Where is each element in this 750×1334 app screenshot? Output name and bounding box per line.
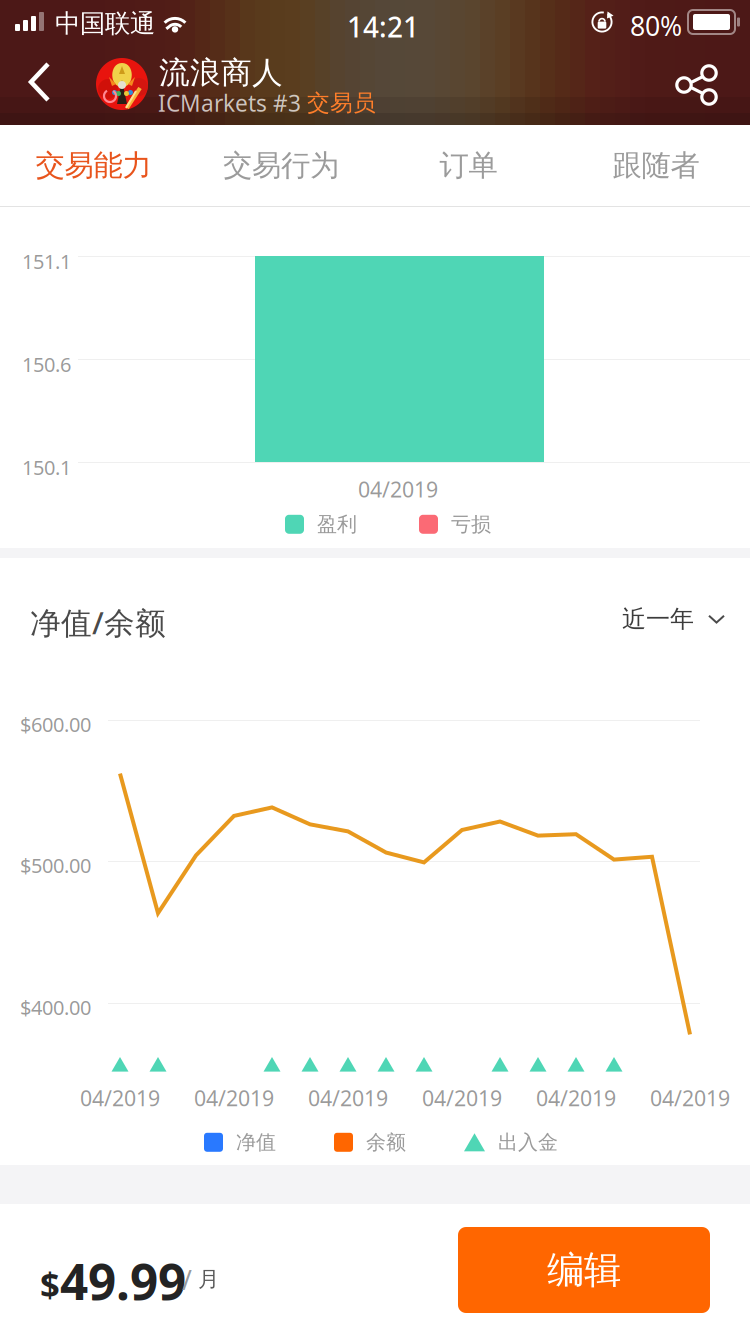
staticText: 中国联通 xyxy=(55,8,155,39)
staticText: 订单 xyxy=(439,147,497,183)
staticText: 出入金 xyxy=(498,1130,558,1155)
staticText: 80% xyxy=(630,8,682,43)
staticText: $400.00 xyxy=(20,994,91,1021)
staticText: $500.00 xyxy=(20,852,91,879)
staticText: 04/2019 xyxy=(194,1084,274,1112)
staticText: 净值/余额 xyxy=(30,602,166,643)
staticText: 04/2019 xyxy=(536,1084,616,1112)
button[interactable]: 编辑 xyxy=(458,1227,710,1313)
staticText: 交易能力 xyxy=(35,147,151,183)
staticText: 月 xyxy=(198,1266,219,1292)
staticText: 04/2019 xyxy=(358,475,438,503)
button[interactable]: Back xyxy=(4,45,76,119)
button[interactable]: 订单 xyxy=(375,125,562,206)
staticText: 04/2019 xyxy=(308,1084,388,1112)
button[interactable]: 跟随者 xyxy=(562,125,750,206)
button[interactable]: 近一年 xyxy=(610,593,737,645)
staticText: 04/2019 xyxy=(422,1084,502,1112)
button[interactable]: Share xyxy=(653,47,739,121)
staticText: 151.1 xyxy=(22,248,71,275)
staticText: 近一年 xyxy=(622,604,694,634)
staticText: 亏损 xyxy=(451,512,491,537)
staticText: 交易员 xyxy=(307,89,376,117)
staticText: ICMarkets #3 xyxy=(158,88,307,118)
button[interactable]: 交易能力 xyxy=(0,125,187,206)
staticText: 150.1 xyxy=(22,454,71,481)
staticText: 净值 xyxy=(236,1130,276,1155)
staticText: $600.00 xyxy=(20,711,91,738)
staticText: 编辑 xyxy=(547,1247,621,1293)
staticText: 跟随者 xyxy=(612,147,699,183)
staticText: 04/2019 xyxy=(80,1084,160,1112)
staticText: 流浪商人 xyxy=(159,54,283,92)
staticText: 150.6 xyxy=(22,351,71,378)
staticText: 04/2019 xyxy=(650,1084,730,1112)
button[interactable]: 交易行为 xyxy=(187,125,375,206)
staticText: 余额 xyxy=(366,1130,406,1155)
staticText: 49.99 xyxy=(60,1248,186,1313)
staticText: $ xyxy=(40,1261,60,1307)
staticText: 盈利 xyxy=(317,512,357,537)
staticText: 交易行为 xyxy=(223,147,339,183)
staticText: / xyxy=(182,1262,192,1297)
staticText: 14:21 xyxy=(347,8,419,45)
